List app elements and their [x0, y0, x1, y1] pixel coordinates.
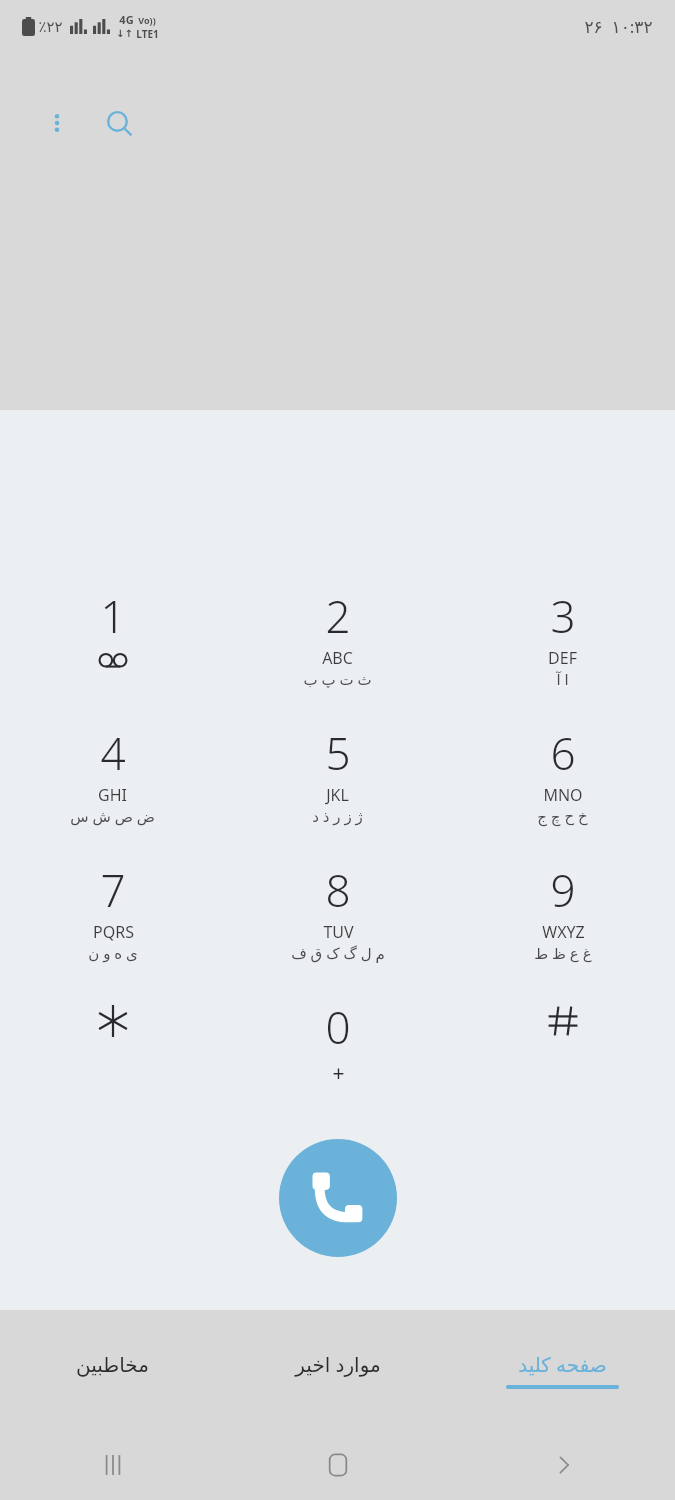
button[interactable]: Back	[450, 1430, 675, 1500]
staticText: ی ه و ن	[88, 943, 138, 963]
button[interactable]: Call	[279, 1139, 397, 1257]
staticText: 8	[325, 860, 351, 920]
staticText: غ ع ظ ط	[534, 943, 592, 963]
staticText: LTE1	[136, 27, 159, 41]
staticText: 7	[100, 860, 126, 920]
staticText: ا آ	[556, 669, 569, 689]
staticText: PQRS	[93, 921, 134, 943]
button[interactable]: مخاطبین	[0, 1310, 225, 1430]
staticText: 9	[550, 860, 576, 920]
staticText: ABC	[322, 647, 353, 669]
button[interactable]: 9	[450, 854, 675, 991]
staticText: صفحه کلید	[518, 1351, 607, 1378]
staticText: مخاطبین	[76, 1353, 149, 1376]
button[interactable]: 8	[225, 854, 450, 991]
button[interactable]: Recents	[0, 1430, 225, 1500]
staticText: 3	[550, 586, 576, 646]
button[interactable]: Star	[0, 991, 225, 1111]
staticText: MNO	[543, 784, 583, 806]
button[interactable]: موارد اخیر	[225, 1310, 450, 1430]
staticText: موارد اخیر	[295, 1351, 381, 1378]
staticText: 5	[325, 723, 351, 783]
staticText: ۲۶ ۱۰:۳۲	[584, 15, 653, 38]
staticText: 1	[100, 586, 126, 646]
staticText: Vo))	[138, 14, 156, 26]
staticText: JKL	[326, 784, 349, 806]
staticText: WXYZ	[542, 921, 585, 943]
staticText: ث ت پ ب	[303, 669, 372, 689]
staticText: 0	[325, 997, 351, 1057]
staticText: TUV	[323, 921, 354, 943]
button[interactable]: Search	[95, 99, 145, 149]
staticText: خ ح چ ج	[537, 806, 588, 826]
button[interactable]: 0	[225, 991, 450, 1111]
button[interactable]: Home	[225, 1430, 450, 1500]
staticText: 4G	[119, 12, 134, 27]
button[interactable]: 7	[0, 854, 225, 991]
staticText: 2	[325, 586, 351, 646]
staticText: م ل گ ک ق ف	[291, 943, 385, 963]
button[interactable]: Pound	[450, 991, 675, 1111]
button[interactable]: 1	[0, 580, 225, 717]
button[interactable]: 3	[450, 580, 675, 717]
staticText: GHI	[98, 784, 127, 806]
button[interactable]: 4	[0, 717, 225, 854]
button[interactable]: 2	[225, 580, 450, 717]
staticText: ↓↑	[116, 28, 133, 40]
staticText: +	[332, 1059, 345, 1088]
button[interactable]: صفحه کلید	[450, 1310, 675, 1430]
button[interactable]: 6	[450, 717, 675, 854]
button[interactable]: 5	[225, 717, 450, 854]
staticText: 4	[100, 723, 126, 783]
staticText: 6	[550, 723, 576, 783]
staticText: DEF	[548, 647, 577, 669]
staticText: ٪۲۲	[38, 18, 63, 35]
staticText: ژ ز ر ذ د	[312, 806, 363, 826]
staticText: ض ص ش س	[70, 806, 155, 826]
button[interactable]: More options	[33, 99, 81, 147]
